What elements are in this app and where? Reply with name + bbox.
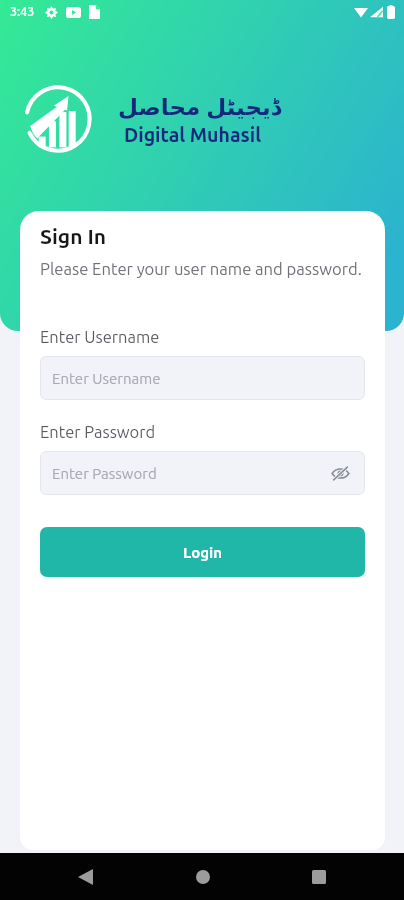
button[interactable]: Enter Password [40, 451, 365, 495]
staticText: Sign In [40, 224, 107, 248]
staticText: Login [183, 544, 223, 561]
staticText: Enter Username [40, 328, 160, 346]
staticText: Enter Password [52, 465, 157, 482]
staticText: Please Enter your user name and password… [40, 260, 362, 279]
button[interactable]: Recents [294, 853, 343, 900]
staticText: Enter Password [40, 423, 156, 441]
button[interactable]: Enter Username [40, 356, 365, 400]
staticText: Enter Username [52, 370, 161, 387]
button[interactable]: Login [40, 527, 365, 577]
button[interactable]: Show password [327, 460, 353, 486]
staticText: Digital Muhasil [124, 124, 262, 146]
staticText: ڈیجیٹل محاصل [118, 90, 281, 121]
staticText: 3:43 [10, 4, 35, 18]
button[interactable]: Home [178, 853, 227, 900]
button[interactable]: Back [61, 853, 110, 900]
